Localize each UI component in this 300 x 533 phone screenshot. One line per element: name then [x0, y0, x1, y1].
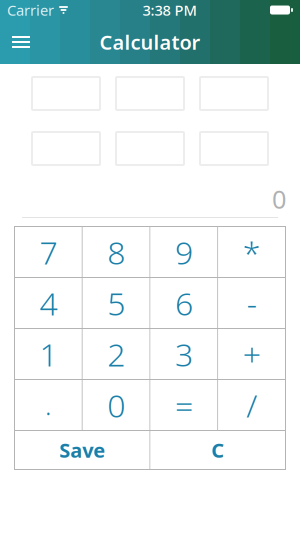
button[interactable]: 6 [150, 278, 217, 328]
staticText: / [246, 384, 257, 426]
button[interactable]: 9 [150, 227, 217, 277]
staticText: * [243, 231, 261, 273]
button[interactable]: / [218, 380, 285, 430]
button[interactable]: 1 [15, 329, 82, 379]
staticText: 1 [39, 333, 57, 375]
staticText: 3:38 PM [142, 0, 196, 20]
button[interactable]: 4 [15, 278, 82, 328]
staticText: 6 [175, 282, 193, 324]
button[interactable]: = [150, 380, 217, 430]
staticText: 0 [107, 384, 125, 426]
staticText: + [243, 333, 261, 375]
staticText: Carrier [7, 0, 54, 20]
staticText: 7 [39, 231, 57, 273]
staticText: C [211, 437, 224, 463]
staticText: 0 [272, 182, 286, 216]
button[interactable]: 7 [15, 227, 82, 277]
staticText: - [247, 282, 257, 324]
button[interactable]: 0 [83, 380, 150, 430]
staticText: . [45, 387, 52, 423]
button[interactable]: 2 [83, 329, 150, 379]
staticText: 2 [107, 333, 125, 375]
button[interactable]: Menu [0, 20, 42, 64]
button[interactable]: Save [15, 431, 149, 469]
button[interactable]: - [218, 278, 285, 328]
button[interactable]: 8 [83, 227, 150, 277]
button[interactable]: * [218, 227, 285, 277]
staticText: 4 [39, 282, 57, 324]
button[interactable]: . [15, 380, 82, 430]
staticText: Save [59, 437, 105, 463]
button[interactable]: 3 [150, 329, 217, 379]
button[interactable]: + [218, 329, 285, 379]
staticText: 8 [107, 231, 125, 273]
staticText: 5 [107, 282, 125, 324]
staticText: 3 [175, 333, 193, 375]
staticText: 9 [175, 231, 193, 273]
button[interactable]: C [150, 431, 285, 469]
button[interactable]: 5 [83, 278, 150, 328]
staticText: = [175, 384, 193, 426]
staticText: Calculator [99, 29, 200, 55]
